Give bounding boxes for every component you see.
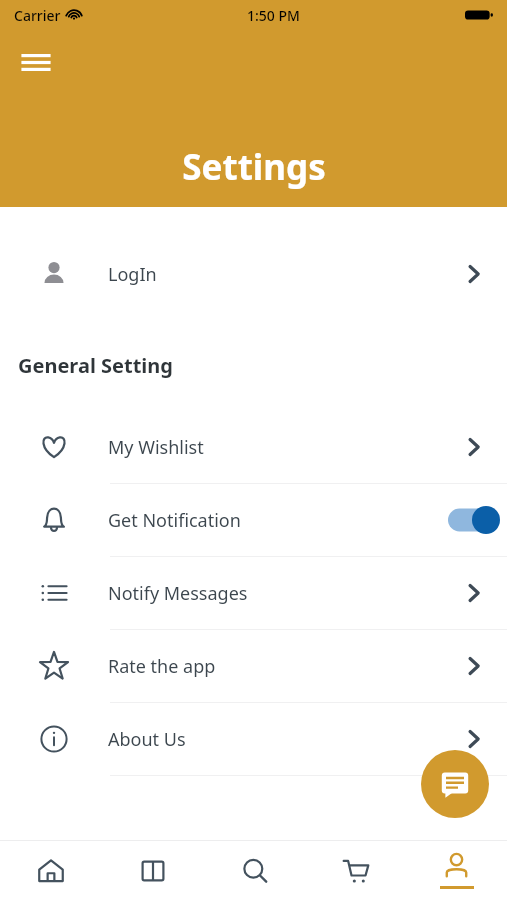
staticText: Carrier (14, 6, 61, 25)
button[interactable]: Chat (421, 750, 489, 818)
staticText: About Us (108, 727, 186, 752)
button[interactable]: LogIn (0, 238, 507, 310)
staticText: LogIn (108, 262, 157, 287)
button[interactable]: My Wishlist (0, 411, 507, 483)
staticText: My Wishlist (108, 435, 204, 460)
button[interactable]: Catalog (102, 841, 204, 900)
button[interactable]: Cart (305, 841, 406, 900)
staticText: Notify Messages (108, 581, 248, 606)
staticText: 1:50 PM (247, 6, 300, 25)
button[interactable]: Profile (406, 841, 507, 900)
button[interactable]: About Us (0, 703, 507, 775)
button[interactable]: Search (204, 841, 305, 900)
staticText: Settings (182, 143, 326, 191)
staticText: Get Notification (108, 508, 241, 533)
staticText: Rate the app (108, 654, 216, 679)
button[interactable]: Home (0, 841, 102, 900)
button[interactable]: Menu (16, 42, 56, 82)
button[interactable]: Notify Messages (0, 557, 507, 629)
button[interactable]: Get Notification (0, 484, 507, 556)
button[interactable]: Rate the app (0, 630, 507, 702)
staticText: General Setting (18, 352, 173, 379)
